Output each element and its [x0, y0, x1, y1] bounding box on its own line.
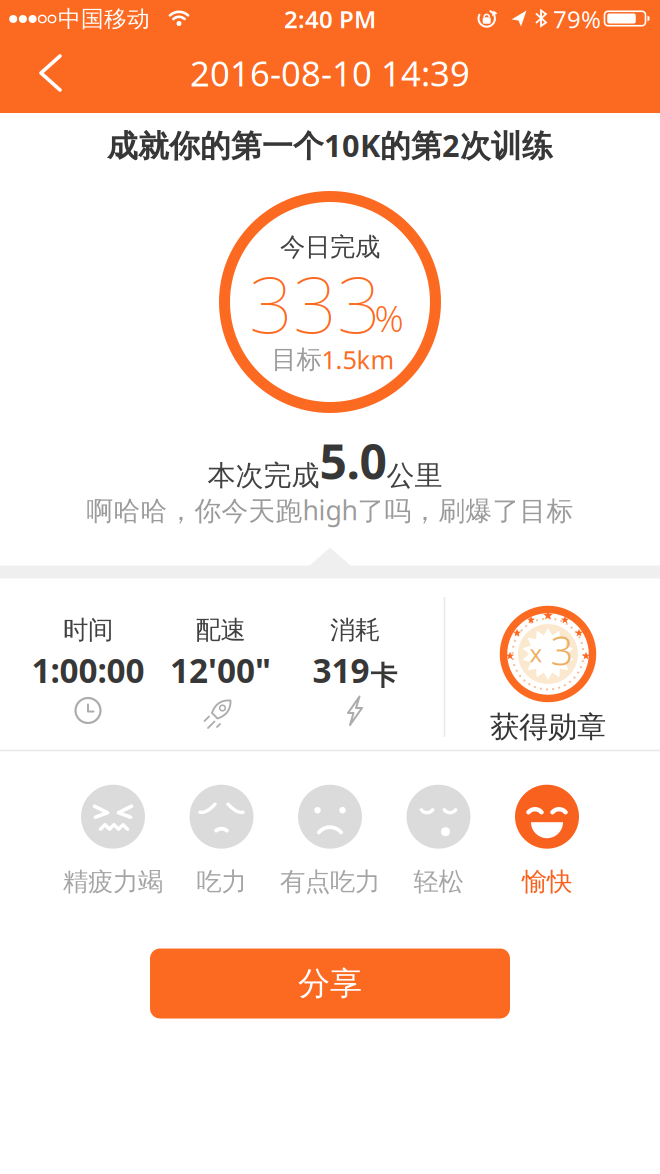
staticText: 消耗: [330, 614, 380, 645]
staticText: 愉快: [522, 866, 572, 897]
staticText: 3: [550, 623, 573, 676]
staticText: 配速: [195, 614, 245, 645]
staticText: 本次完成: [207, 458, 319, 493]
staticText: 获得勋章: [490, 709, 606, 745]
button[interactable]: 吃力: [189, 785, 253, 897]
staticText: 今日完成: [280, 231, 380, 262]
staticText: 啊哈哈，你今天跑high了吗，刷爆了目标: [86, 492, 573, 528]
staticText: 分享: [298, 964, 362, 1003]
staticText: 1:00:00: [31, 648, 144, 692]
staticText: 目标: [271, 344, 321, 375]
staticText: 吃力: [196, 866, 246, 897]
button[interactable]: 轻松: [406, 785, 470, 897]
button[interactable]: 精疲力竭: [63, 785, 163, 897]
button[interactable]: 愉快: [515, 785, 579, 897]
staticText: 卡: [370, 659, 397, 692]
staticText: 公里: [386, 458, 442, 493]
staticText: 中国移动: [58, 5, 150, 33]
staticText: 12'00": [170, 648, 271, 692]
staticText: %: [374, 294, 403, 342]
staticText: 时间: [63, 614, 113, 645]
staticText: 2:40 PM: [284, 3, 376, 35]
staticText: 成就你的第一个10K的第2次训练: [107, 125, 553, 165]
staticText: x: [529, 637, 542, 669]
button[interactable]: Back: [28, 51, 72, 95]
staticText: 5.0: [319, 429, 386, 493]
button[interactable]: 有点吃力: [280, 785, 380, 897]
staticText: 精疲力竭: [63, 866, 163, 897]
staticText: 1.5km: [321, 343, 394, 376]
staticText: 333: [249, 252, 381, 354]
staticText: 319: [312, 648, 369, 692]
button[interactable]: 分享: [150, 948, 510, 1018]
staticText: 2016-08-10 14:39: [190, 50, 470, 96]
staticText: 79%: [553, 3, 601, 35]
staticText: 轻松: [413, 866, 463, 897]
staticText: 有点吃力: [280, 866, 380, 897]
